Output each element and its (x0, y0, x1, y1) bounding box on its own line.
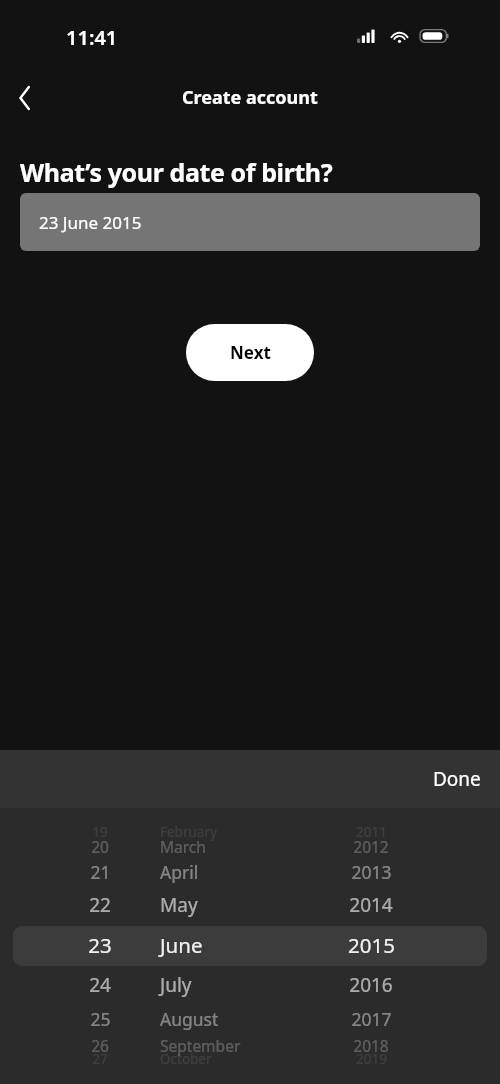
staticText: 24 (89, 972, 111, 998)
staticText: 26 (91, 1035, 109, 1056)
staticText: 22 (89, 892, 111, 918)
staticText: 23 (88, 931, 112, 959)
button[interactable]: 2011 (311, 823, 431, 841)
staticText: 21 (90, 860, 111, 884)
button[interactable]: 2016 (311, 972, 431, 998)
staticText: 20 (91, 836, 109, 857)
button[interactable]: Back (4, 77, 46, 119)
button[interactable]: 2013 (311, 860, 431, 884)
staticText: May (160, 892, 198, 918)
staticText: 2013 (351, 860, 392, 884)
staticText: February (160, 823, 217, 841)
button[interactable]: Next (186, 324, 314, 381)
button[interactable]: February (160, 823, 320, 841)
staticText: 2012 (353, 836, 389, 857)
staticText: 19 (92, 823, 108, 841)
button[interactable]: 2012 (311, 836, 431, 857)
button[interactable]: October (160, 1050, 320, 1068)
staticText: 2019 (356, 1050, 387, 1068)
button[interactable]: 23 June 2015 (20, 193, 480, 251)
button[interactable]: 24 (40, 972, 160, 998)
staticText: 2014 (349, 892, 393, 918)
staticText: July (160, 972, 192, 998)
staticText: Next (230, 341, 271, 364)
button[interactable]: 2017 (311, 1007, 431, 1031)
button[interactable]: 27 (40, 1050, 160, 1068)
button[interactable]: 20 (40, 836, 160, 857)
button[interactable]: August (160, 1007, 320, 1031)
staticText: 27 (92, 1050, 108, 1068)
staticText: 2016 (349, 972, 393, 998)
button[interactable]: June (160, 931, 320, 959)
staticText: 11:41 (66, 24, 118, 51)
button[interactable]: 2019 (311, 1050, 431, 1068)
staticText: 2011 (356, 823, 387, 841)
button[interactable]: July (160, 972, 320, 998)
button[interactable]: 22 (40, 892, 160, 918)
staticText: 2017 (351, 1007, 392, 1031)
button[interactable]: March (160, 836, 320, 857)
button[interactable]: 25 (40, 1007, 160, 1031)
staticText: June (160, 931, 203, 959)
button[interactable]: 2014 (311, 892, 431, 918)
button[interactable]: 23 (40, 931, 160, 959)
staticText: What’s your date of birth? (20, 155, 333, 189)
staticText: September (160, 1035, 241, 1056)
staticText: 25 (90, 1007, 111, 1031)
staticText: Done (433, 766, 481, 792)
staticText: 2015 (348, 931, 395, 959)
button[interactable]: April (160, 860, 320, 884)
staticText: August (160, 1007, 219, 1031)
button[interactable]: September (160, 1035, 320, 1056)
button[interactable]: 2018 (311, 1035, 431, 1056)
staticText: March (160, 836, 206, 857)
staticText: Create account (182, 85, 318, 110)
button[interactable]: 2015 (311, 931, 431, 959)
button[interactable]: Done (414, 750, 500, 808)
button[interactable]: May (160, 892, 320, 918)
staticText: 23 June 2015 (39, 211, 142, 234)
staticText: October (160, 1050, 212, 1068)
staticText: 2018 (353, 1035, 389, 1056)
staticText: April (160, 860, 199, 884)
button[interactable]: 21 (40, 860, 160, 884)
button[interactable]: 26 (40, 1035, 160, 1056)
